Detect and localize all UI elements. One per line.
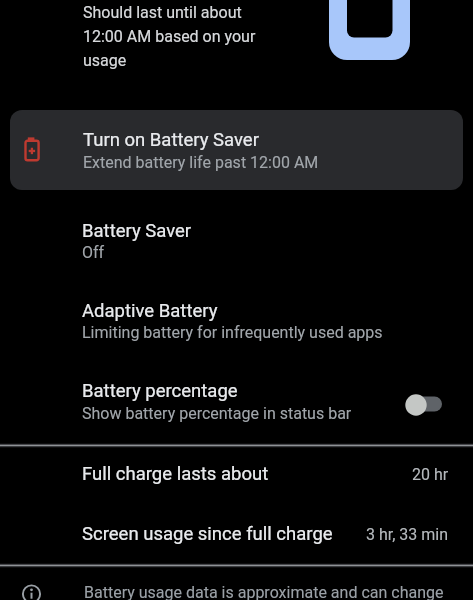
staticText: 3 hr, 33 min [366, 525, 449, 544]
staticText: Turn on Battery Saver [83, 129, 259, 151]
staticText: Limiting battery for infrequently used a… [82, 323, 383, 342]
staticText: Screen usage since full charge [82, 523, 333, 545]
staticText: Off [82, 243, 105, 262]
staticText: Battery Saver [82, 220, 192, 242]
staticText: 20 hr [412, 465, 449, 484]
staticText: Battery usage data is approximate and ca… [84, 583, 444, 600]
button[interactable]: Turn on Battery Saver [10, 110, 463, 190]
button[interactable]: Adaptive Battery [0, 276, 473, 357]
staticText: Show battery percentage in status bar [82, 404, 352, 423]
button[interactable]: Screen usage since full charge [0, 506, 473, 564]
staticText: Should last until about 12:00 AM based o… [83, 3, 256, 70]
staticText: Adaptive Battery [82, 300, 218, 322]
button[interactable]: Full charge lasts about [0, 447, 473, 506]
button[interactable]: Battery Saver [0, 196, 473, 276]
button[interactable]: Battery percentage [0, 357, 473, 442]
staticText: Extend battery life past 12:00 AM [83, 153, 319, 172]
staticText: Full charge lasts about [82, 463, 269, 485]
staticText: Battery percentage [82, 380, 238, 402]
